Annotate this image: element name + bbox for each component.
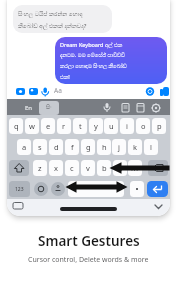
staticText: p [157,121,162,131]
button[interactable]: m [128,160,142,176]
button[interactable] [147,181,168,197]
button[interactable]: En [21,101,37,115]
staticText: t [79,121,82,131]
staticText: o [141,121,146,131]
button[interactable]: c [65,160,79,176]
staticText: f [71,142,74,152]
staticText: c [70,163,74,173]
button[interactable]: n [113,160,127,176]
button[interactable]: y [89,118,103,134]
button[interactable]: p [152,118,166,134]
button[interactable]: g [81,139,95,155]
button[interactable]: Dream Keyboard අල් එක දැනටම. මම මේසේජ් ප… [60,37,167,84]
staticText: x [54,163,58,173]
staticText: h [102,142,107,152]
staticText: y [94,121,98,131]
staticText: 123 [15,186,24,193]
staticText: a [22,142,27,152]
staticText: v [86,163,90,173]
staticText: සිංහල ටයිප් කරන්න හොඳ කීබෝඩ් අල් එකක් දන… [18,10,87,29]
button[interactable]: h [97,139,111,155]
staticText: Smart Gestures [38,232,140,250]
button[interactable] [68,181,124,197]
button[interactable]: s [33,139,47,155]
button[interactable]: j [112,139,126,155]
staticText: i [126,121,128,131]
button[interactable]: සිං [39,101,59,115]
button[interactable]: q [9,118,23,134]
button[interactable]: b [97,160,111,176]
staticText: d [54,142,59,152]
staticText: w [29,121,35,131]
staticText: සිං [46,105,52,111]
button[interactable]: o [136,118,150,134]
staticText: n [118,163,123,173]
staticText: Aa [54,86,62,95]
button[interactable]: t [73,118,87,134]
button[interactable]: f [65,139,79,155]
staticText: q [14,121,19,131]
button[interactable]: e [41,118,55,134]
button[interactable]: 123 [9,181,30,197]
button[interactable]: a [17,139,31,155]
button[interactable] [148,160,168,176]
button[interactable]: u [104,118,118,134]
button[interactable]: i [120,118,134,134]
button[interactable] [51,182,65,196]
staticText: e [46,121,51,131]
staticText: b [102,163,107,173]
button[interactable] [34,182,48,196]
staticText: k [133,142,138,152]
button[interactable]: Aa [54,86,62,95]
staticText: Cursor control, Delete words & more [28,255,149,265]
button[interactable]: x [49,160,63,176]
button[interactable]: d [49,139,63,155]
button[interactable]: v [81,160,95,176]
staticText: z [38,163,42,173]
staticText: r [62,121,66,131]
staticText: l [150,142,152,152]
button[interactable]: l [144,139,158,155]
staticText: j [118,142,120,152]
staticText: Dream Keyboard අල් එක දැනටම. මම මේසේජ් ප… [60,41,127,81]
button[interactable]: r [57,118,71,134]
staticText: g [86,142,91,152]
staticText: s [38,142,42,152]
button[interactable] [9,160,29,176]
staticText: m [131,163,139,173]
staticText: u [109,121,114,131]
button[interactable] [130,181,144,197]
button[interactable]: k [128,139,142,155]
button[interactable]: සිංහල ටයිප් කරන්න හොඳ කීබෝඩ් අල් එකක් දන… [18,5,112,33]
button[interactable]: z [33,160,47,176]
staticText: En [25,104,33,112]
button[interactable]: w [25,118,39,134]
